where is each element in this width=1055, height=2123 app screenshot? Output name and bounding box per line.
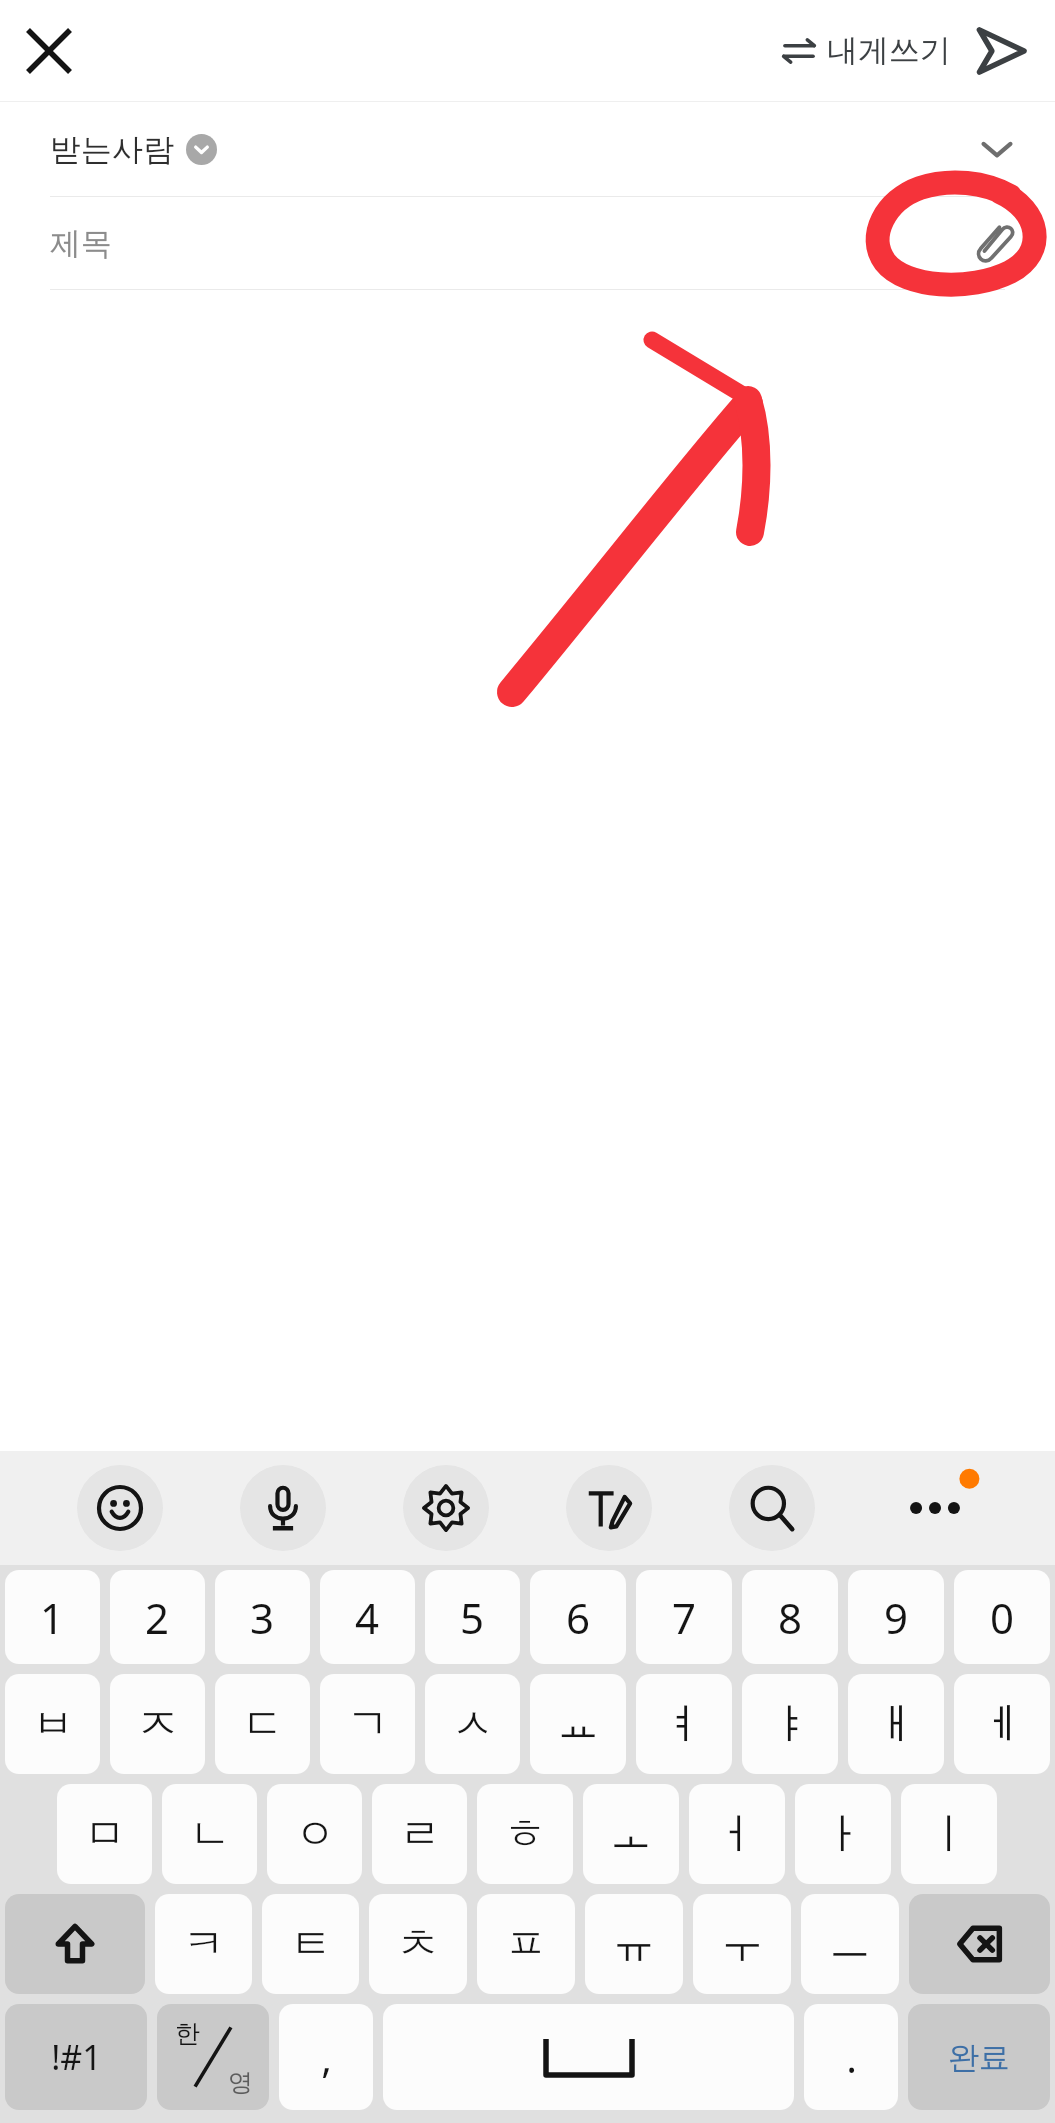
button[interactable]: More options [892, 1465, 978, 1551]
staticText: ㅊ [397, 1918, 439, 1971]
staticText: 내게쓰기 [827, 31, 951, 70]
staticText: 한 [175, 2018, 200, 2049]
staticText: ㅂ [32, 1698, 74, 1751]
staticText: 받는사람 [50, 130, 174, 169]
button[interactable]: ㅜ [693, 1894, 791, 1994]
staticText: ㅐ [875, 1698, 917, 1751]
button[interactable]: ㅣ [901, 1784, 997, 1884]
staticText: 제목 [50, 224, 112, 263]
staticText: ㅋ [183, 1918, 225, 1971]
staticText: 9 [884, 1589, 909, 1646]
staticText: ㅁ [84, 1808, 126, 1861]
button[interactable]: ㅍ [477, 1894, 575, 1994]
button[interactable]: ㅇ [267, 1784, 362, 1884]
button[interactable]: ㄱ [320, 1674, 415, 1774]
staticText: ㅏ [822, 1808, 864, 1861]
staticText: ㅗ [610, 1808, 652, 1861]
button[interactable]: Backspace [909, 1894, 1050, 1994]
staticText: 6 [566, 1589, 591, 1646]
staticText: ㅜ [721, 1918, 763, 1971]
staticText: ㅛ [557, 1698, 599, 1751]
button[interactable]: Close [16, 18, 82, 84]
button[interactable]: Handwriting [566, 1465, 652, 1551]
button[interactable] [0, 197, 1055, 289]
staticText: 5 [460, 1589, 485, 1646]
button[interactable] [0, 102, 1055, 196]
button[interactable]: ㅔ [954, 1674, 1050, 1774]
button[interactable]: ㅂ [5, 1674, 100, 1774]
button[interactable]: !#1 [5, 2004, 147, 2110]
staticText: ㅈ [137, 1698, 179, 1751]
staticText: ㅔ [981, 1698, 1023, 1751]
button[interactable]: ㄷ [215, 1674, 310, 1774]
button[interactable]: ㅐ [848, 1674, 944, 1774]
staticText: ㄱ [347, 1698, 389, 1751]
button[interactable]: ㅋ [155, 1894, 252, 1994]
button[interactable]: 9 [848, 1570, 944, 1664]
button[interactable]: 4 [320, 1570, 415, 1664]
staticText: 4 [355, 1589, 380, 1646]
staticText: ㅍ [505, 1918, 547, 1971]
button[interactable]: Expand recipients [969, 121, 1025, 177]
button[interactable]: ㅅ [425, 1674, 520, 1774]
button[interactable]: ㅡ [801, 1894, 899, 1994]
button[interactable]: Send [965, 15, 1037, 87]
button[interactable]: ㅑ [742, 1674, 838, 1774]
button[interactable]: Emoji [77, 1465, 163, 1551]
button[interactable]: ㅛ [530, 1674, 626, 1774]
button[interactable]: Shift [5, 1894, 145, 1994]
staticText: ㅑ [769, 1698, 811, 1751]
button[interactable]: 내게쓰기 [775, 21, 959, 80]
button[interactable]: 6 [530, 1570, 626, 1664]
staticText: 완료 [948, 2038, 1010, 2077]
staticText: 2 [145, 1589, 170, 1646]
button[interactable]: Settings [403, 1465, 489, 1551]
staticText: , [321, 2030, 332, 2084]
button[interactable]: 7 [636, 1570, 732, 1664]
button[interactable]: Search [729, 1465, 815, 1551]
staticText: 7 [672, 1589, 697, 1646]
button[interactable]: ㅗ [583, 1784, 679, 1884]
button[interactable]: . [804, 2004, 898, 2110]
staticText: ㅠ [613, 1918, 655, 1971]
staticText: ㄷ [242, 1698, 284, 1751]
button[interactable]: ㅁ [57, 1784, 152, 1884]
staticText: ㅡ [829, 1918, 871, 1971]
button[interactable]: 1 [5, 1570, 100, 1664]
button[interactable]: Space [383, 2004, 794, 2110]
button[interactable]: ㅈ [110, 1674, 205, 1774]
button[interactable]: 0 [954, 1570, 1050, 1664]
staticText: ㅓ [716, 1808, 758, 1861]
staticText: ㄹ [399, 1808, 441, 1861]
staticText: ㅇ [294, 1808, 336, 1861]
button[interactable]: ㅠ [585, 1894, 683, 1994]
button[interactable]: 5 [425, 1570, 520, 1664]
button[interactable]: ㄴ [162, 1784, 257, 1884]
button[interactable]: Voice input [240, 1465, 326, 1551]
button[interactable]: Attach file [963, 211, 1027, 275]
staticText: 영 [228, 2067, 253, 2098]
staticText: !#1 [51, 2034, 102, 2080]
button[interactable]: , [279, 2004, 373, 2110]
button[interactable]: Korean English toggle [157, 2004, 269, 2110]
button[interactable]: ㅊ [369, 1894, 467, 1994]
button[interactable]: 8 [742, 1570, 838, 1664]
staticText: 0 [990, 1589, 1015, 1646]
button[interactable]: ㄹ [372, 1784, 467, 1884]
button[interactable]: 완료 [908, 2004, 1050, 2110]
button[interactable]: ㅌ [262, 1894, 359, 1994]
button[interactable]: 2 [110, 1570, 205, 1664]
button[interactable]: ㅓ [689, 1784, 785, 1884]
staticText: ㅕ [663, 1698, 705, 1751]
staticText: ㅅ [452, 1698, 494, 1751]
button[interactable]: ㅎ [477, 1784, 573, 1884]
button[interactable]: ㅏ [795, 1784, 891, 1884]
staticText: ㄴ [189, 1808, 231, 1861]
staticText: ㅎ [504, 1808, 546, 1861]
button[interactable]: 3 [215, 1570, 310, 1664]
staticText: 1 [40, 1589, 65, 1646]
staticText: 3 [250, 1589, 275, 1646]
button[interactable]: ㅕ [636, 1674, 732, 1774]
staticText: ㅌ [290, 1918, 332, 1971]
staticText: 8 [778, 1589, 803, 1646]
